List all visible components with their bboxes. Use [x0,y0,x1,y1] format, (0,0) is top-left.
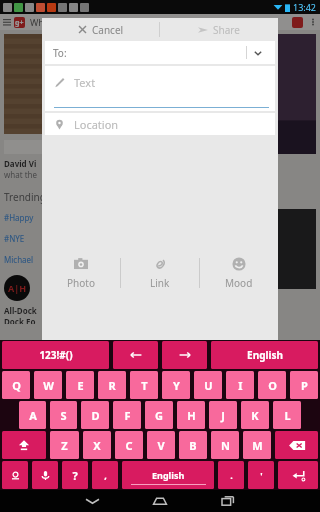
button[interactable]: Voice input [32,461,58,489]
staticText: K [251,408,259,423]
staticText: What's new [30,16,79,28]
button[interactable]: . [218,461,244,489]
staticText: E [77,378,84,393]
staticText: g+ [15,18,24,28]
button[interactable]: Space [122,461,214,489]
button[interactable]: English [211,341,318,369]
staticText: P [301,378,308,393]
staticText: 13:42 [293,1,317,13]
button[interactable]: V [147,431,175,459]
staticText: B [189,438,197,453]
button[interactable]: H [177,401,205,429]
button[interactable]: Location [45,113,275,135]
button[interactable]: Link [121,254,199,292]
staticText: Y [173,378,180,393]
button[interactable]: L [273,401,301,429]
button[interactable]: Hide keyboard [70,490,114,512]
button[interactable]: G [145,401,173,429]
staticText: David Vi [4,158,37,169]
staticText: F [124,408,131,423]
staticText: X [93,438,101,453]
button[interactable]: E [66,371,94,399]
staticText: Trending [4,190,46,204]
button[interactable]: Y [162,371,190,399]
staticText: M [252,438,263,453]
staticText: Cancel [92,23,124,37]
button[interactable]: Backspace [275,431,318,459]
button[interactable]: 123!#() [2,341,109,369]
button[interactable]: Shift [2,431,46,459]
button[interactable]: B [179,431,207,459]
staticText: O [268,378,277,393]
other: Photo [74,257,88,271]
staticText: L [284,408,291,423]
button[interactable]: N [211,431,239,459]
staticText: C [125,438,133,453]
button[interactable]: T [130,371,158,399]
button[interactable]: R [98,371,126,399]
button[interactable]: Z [50,431,79,459]
staticText: To: [53,46,67,60]
button[interactable]: Home [138,490,182,512]
button[interactable]: Q [2,371,30,399]
staticText: J [221,408,225,423]
button[interactable]: Keyboard settings [2,461,28,489]
button[interactable]: Move cursor left [113,341,158,369]
staticText: Michael [4,254,34,265]
other: Mood [232,257,246,271]
staticText: Link [150,276,170,290]
button[interactable]: , [92,461,118,489]
staticText: English [247,348,283,362]
button[interactable]: K [241,401,269,429]
staticText: A [29,408,37,423]
staticText: A|H [8,282,27,294]
button[interactable]: Share [160,18,278,41]
staticText: Mood [225,276,253,290]
staticText: V [157,438,165,453]
staticText: G [155,408,163,423]
button[interactable]: C [115,431,143,459]
button[interactable]: P [290,371,318,399]
staticText: Z [61,438,68,453]
button[interactable]: J [209,401,237,429]
button[interactable]: W [34,371,62,399]
button[interactable]: F [113,401,141,429]
button[interactable]: M [243,431,271,459]
staticText: Location [74,117,119,132]
button[interactable]: Photo [42,254,120,292]
button[interactable]: ? [62,461,88,489]
button[interactable]: Text [45,66,275,111]
staticText: ? [72,468,78,483]
button[interactable]: D [81,401,109,429]
staticText: Text [74,75,96,90]
button[interactable]: U [194,371,222,399]
staticText: #Happy [4,212,34,223]
button[interactable]: Mood [200,254,278,292]
button[interactable]: Cancel [42,18,159,41]
staticText: ' [260,469,263,481]
button[interactable]: Enter [278,461,318,489]
button[interactable]: X [83,431,111,459]
staticText: D [91,408,100,423]
staticText: S [60,408,67,423]
button[interactable]: A [19,401,46,429]
button[interactable]: I [226,371,254,399]
staticText: It [74,73,86,95]
button[interactable]: O [258,371,286,399]
staticText: I [238,378,243,393]
button[interactable]: S [50,401,77,429]
staticText: , [104,469,107,481]
staticText: Share [213,23,240,37]
staticText: . [230,469,233,481]
button[interactable]: Recent apps [206,490,250,512]
button[interactable]: ' [248,461,274,489]
button[interactable]: Move cursor right [162,341,207,369]
staticText: Q [12,378,21,393]
button[interactable]: To: [45,41,275,64]
staticText: T [141,378,148,393]
staticText: what the [4,169,38,180]
staticText: Dock Fo [4,316,36,324]
